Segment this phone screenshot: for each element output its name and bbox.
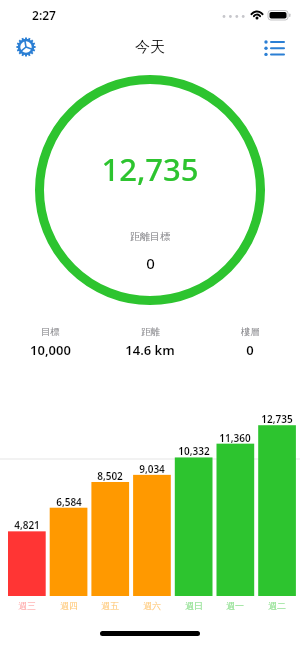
button[interactable]: 週三 bbox=[0, 598, 57, 612]
button[interactable]: 週四 bbox=[39, 598, 99, 612]
button[interactable] bbox=[12, 33, 40, 61]
button[interactable]: 週六 bbox=[122, 598, 182, 612]
staticText: 目標 bbox=[41, 326, 60, 338]
staticText: 10,000 bbox=[30, 341, 71, 359]
staticText: 12,735 bbox=[261, 412, 293, 426]
staticText: 樓層 bbox=[241, 326, 260, 338]
staticText: 週一 bbox=[226, 600, 244, 611]
button[interactable] bbox=[258, 35, 288, 59]
staticText: 距離 bbox=[141, 326, 160, 338]
staticText: 14.6 km bbox=[125, 341, 175, 359]
staticText: 週四 bbox=[60, 600, 78, 611]
staticText: 11,360 bbox=[219, 431, 251, 445]
staticText: 週三 bbox=[18, 600, 36, 611]
staticText: 12,735 bbox=[101, 148, 199, 185]
button[interactable]: 樓層 bbox=[200, 326, 300, 362]
button[interactable]: 目標 bbox=[0, 326, 100, 362]
staticText: 週二 bbox=[268, 600, 286, 611]
staticText: 週五 bbox=[101, 600, 119, 611]
staticText: 週日 bbox=[185, 600, 203, 611]
button[interactable]: 週二 bbox=[247, 598, 300, 612]
staticText: 2:27 bbox=[32, 7, 56, 23]
button[interactable]: 週五 bbox=[80, 598, 140, 612]
staticText: 10,332 bbox=[178, 444, 210, 458]
staticText: 8,502 bbox=[97, 469, 123, 483]
staticText: 9,034 bbox=[139, 462, 165, 476]
staticText: 6,584 bbox=[56, 495, 82, 509]
staticText: 0 bbox=[146, 253, 155, 271]
staticText: 0 bbox=[246, 341, 254, 359]
button[interactable]: 週日 bbox=[164, 598, 224, 612]
staticText: 今天 bbox=[135, 38, 165, 57]
button[interactable]: 週一 bbox=[205, 598, 265, 612]
staticText: 週六 bbox=[143, 600, 161, 611]
button[interactable]: 距離 bbox=[100, 326, 200, 362]
staticText: 距離目標 bbox=[130, 230, 170, 243]
staticText: 4,821 bbox=[14, 518, 40, 532]
